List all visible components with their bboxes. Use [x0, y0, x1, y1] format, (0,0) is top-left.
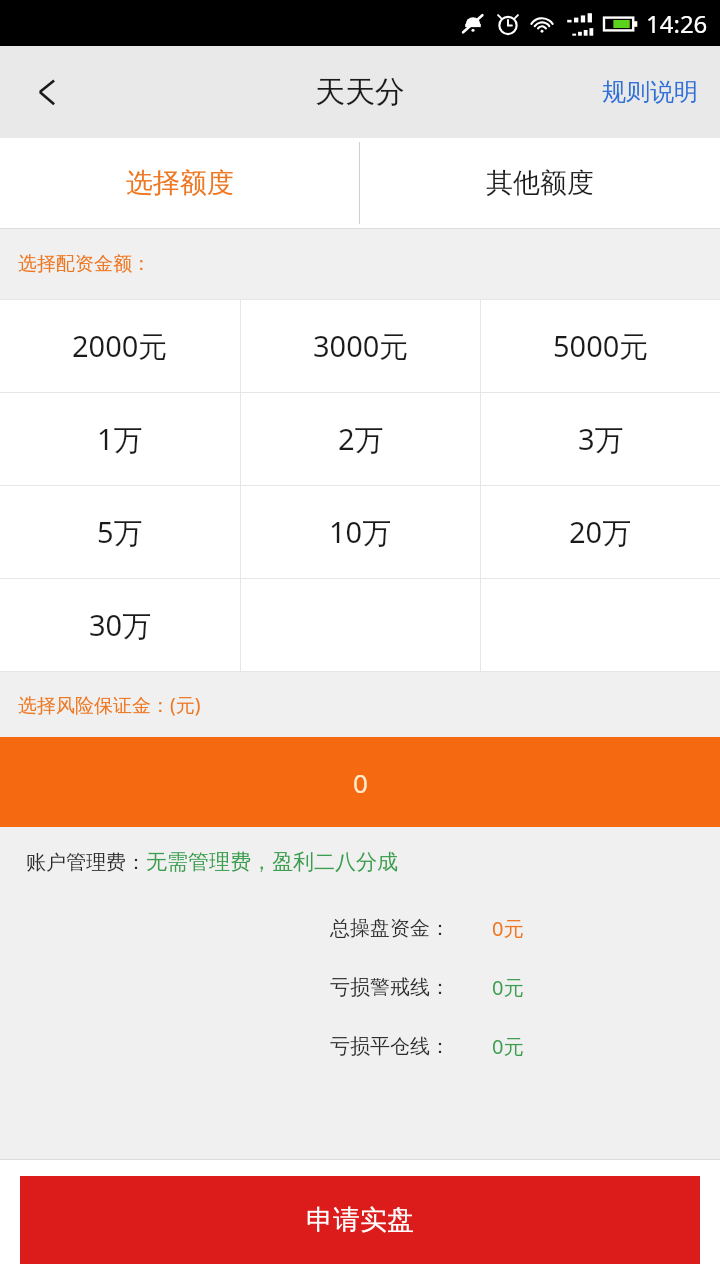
button[interactable]: 0 [0, 737, 720, 827]
staticText: 1万 [97, 419, 143, 459]
staticText: 5万 [97, 512, 143, 552]
button[interactable]: 规则说明 [580, 46, 720, 138]
button[interactable]: 选择额度 [0, 138, 359, 228]
button[interactable]: Back [0, 46, 96, 138]
staticText: 亏损警戒线： [330, 975, 450, 1000]
staticText: 选择风险保证金：(元) [18, 692, 201, 718]
staticText: 申请实盘 [306, 1203, 414, 1237]
button[interactable]: 2000元 [0, 300, 240, 392]
staticText: 3万 [578, 419, 624, 459]
button[interactable]: 3万 [481, 393, 720, 485]
button[interactable]: 30万 [0, 579, 240, 671]
staticText: 选择额度 [126, 166, 234, 200]
staticText: 亏损平仓线： [330, 1034, 450, 1059]
staticText: 14:26 [646, 7, 708, 40]
staticText: 20万 [569, 512, 632, 552]
button[interactable]: 申请实盘 [20, 1176, 700, 1264]
staticText: 账户管理费： [26, 850, 146, 875]
staticText: 选择配资金额： [18, 252, 151, 276]
staticText: 0元 [492, 915, 524, 942]
button[interactable]: 20万 [481, 486, 720, 578]
button[interactable]: 10万 [241, 486, 480, 578]
staticText: 无需管理费，盈利二八分成 [146, 849, 398, 875]
staticText: 天天分 [315, 73, 405, 111]
staticText: 规则说明 [602, 77, 698, 107]
button[interactable]: 其他额度 [360, 138, 720, 228]
staticText: 2000元 [72, 326, 168, 366]
staticText: 0元 [492, 1033, 524, 1060]
button[interactable]: 1万 [0, 393, 240, 485]
staticText: 其他额度 [486, 166, 594, 200]
staticText: 0 [353, 765, 368, 800]
staticText: 2万 [338, 419, 384, 459]
button[interactable]: 5万 [0, 486, 240, 578]
staticText: 30万 [89, 605, 152, 645]
button[interactable]: 3000元 [241, 300, 480, 392]
staticText: 10万 [329, 512, 392, 552]
staticText: 5000元 [553, 326, 649, 366]
staticText: 0元 [492, 974, 524, 1001]
staticText: 3000元 [313, 326, 409, 366]
button[interactable]: 2万 [241, 393, 480, 485]
staticText: 总操盘资金： [330, 916, 450, 941]
button[interactable]: 5000元 [481, 300, 720, 392]
